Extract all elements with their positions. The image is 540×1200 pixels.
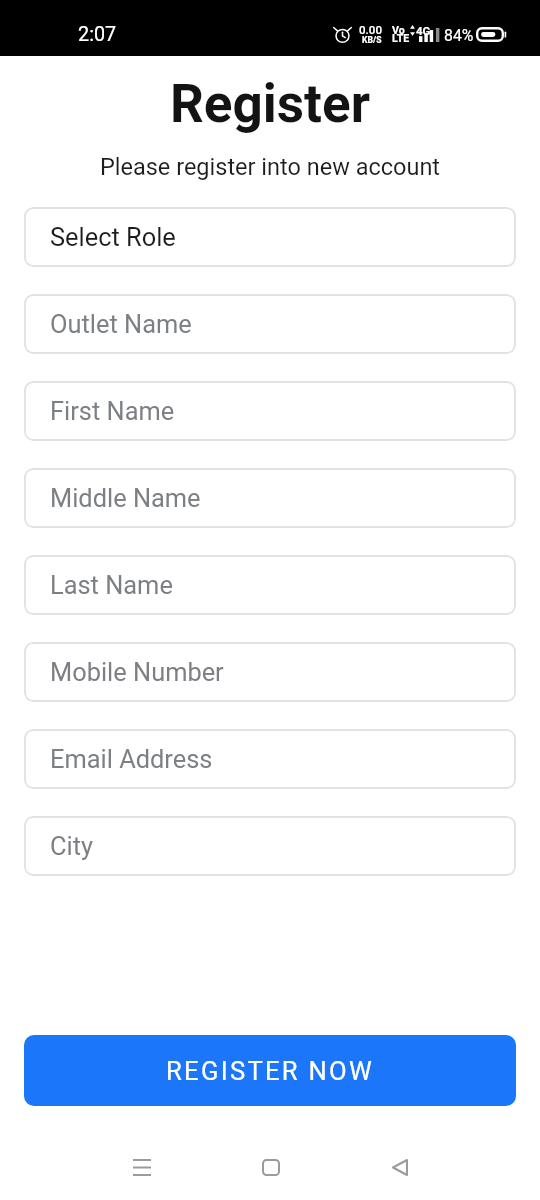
button[interactable]: First Name xyxy=(24,381,516,441)
staticText: REGISTER NOW xyxy=(166,1056,375,1086)
staticText: Please register into new account xyxy=(0,153,540,181)
staticText: Outlet Name xyxy=(50,309,192,339)
button[interactable]: Recent apps xyxy=(77,1147,206,1187)
staticText: Last Name xyxy=(50,570,173,600)
staticText: Email Address xyxy=(50,744,213,774)
staticText: LTE xyxy=(392,32,410,44)
staticText: Select Role xyxy=(50,222,176,252)
button[interactable]: Home xyxy=(206,1147,335,1187)
staticText: 0.00 xyxy=(359,23,383,37)
button[interactable]: Select Role xyxy=(24,207,516,267)
button[interactable]: Back xyxy=(335,1147,464,1187)
staticText: 4G xyxy=(416,24,431,37)
staticText: Register xyxy=(0,73,540,135)
button[interactable]: Mobile Number xyxy=(24,642,516,702)
button[interactable]: Last Name xyxy=(24,555,516,615)
staticText: Vo xyxy=(392,24,405,36)
staticText: 2:07 xyxy=(78,23,117,46)
staticText: First Name xyxy=(50,396,175,426)
button[interactable]: Middle Name xyxy=(24,468,516,528)
staticText: KB/S xyxy=(362,35,382,45)
staticText: City xyxy=(50,831,94,861)
button[interactable]: City xyxy=(24,816,516,876)
staticText: Mobile Number xyxy=(50,657,224,687)
button[interactable]: Email Address xyxy=(24,729,516,789)
staticText: 84% xyxy=(444,26,474,45)
button[interactable]: REGISTER NOW xyxy=(24,1035,516,1106)
button[interactable]: Outlet Name xyxy=(24,294,516,354)
staticText: Middle Name xyxy=(50,483,201,513)
